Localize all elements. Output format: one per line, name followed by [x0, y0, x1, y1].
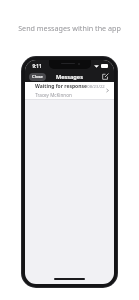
staticText: Send messages within the app [18, 23, 121, 33]
staticText: Waiting for response [35, 83, 87, 90]
staticText: Messages [56, 73, 83, 81]
staticText: Close [32, 74, 43, 80]
button[interactable]: Compose new message [101, 72, 110, 81]
staticText: 08/23/22 [87, 84, 105, 90]
button[interactable]: Close [29, 73, 46, 81]
staticText: Tracey McKinnon [35, 92, 72, 98]
button[interactable]: Waiting for response [25, 82, 114, 99]
staticText: 9:11 [32, 63, 42, 69]
